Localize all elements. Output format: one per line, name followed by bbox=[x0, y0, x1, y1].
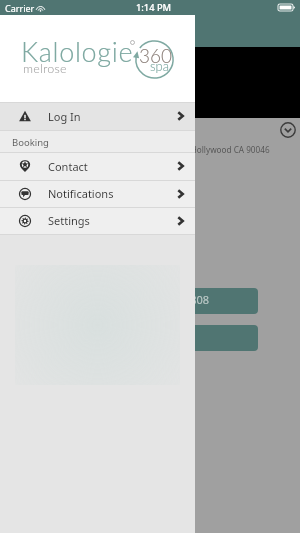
button[interactable]: Contact bbox=[0, 152, 195, 180]
staticText: Notifications bbox=[48, 186, 114, 201]
staticText: Contact bbox=[48, 159, 88, 174]
staticText: melrose bbox=[23, 61, 67, 76]
button[interactable]: Expand details bbox=[280, 122, 296, 138]
staticText: 1:14 PM bbox=[136, 1, 172, 14]
staticText: 8205 Santa Monica Blvd West Hollywood CA… bbox=[76, 144, 270, 155]
button[interactable]: CALL 323 848 8808 bbox=[20, 288, 258, 314]
staticText: Booking bbox=[12, 136, 49, 149]
button[interactable]: Log In bbox=[0, 102, 195, 130]
staticText: Log In bbox=[48, 109, 81, 124]
button[interactable]: GET DIRECTIONS bbox=[20, 325, 258, 351]
staticText: CALL 323 848 8808 bbox=[112, 292, 210, 307]
button[interactable]: Notifications bbox=[0, 180, 195, 207]
button[interactable]: Settings bbox=[0, 207, 195, 234]
staticText: Carrier bbox=[5, 2, 35, 14]
staticText: Kalologie bbox=[21, 35, 134, 67]
staticText: GET DIRECTIONS bbox=[108, 331, 196, 346]
staticText: Settings bbox=[48, 213, 90, 228]
staticText: spa bbox=[150, 58, 169, 74]
staticText: 360 bbox=[139, 44, 173, 67]
